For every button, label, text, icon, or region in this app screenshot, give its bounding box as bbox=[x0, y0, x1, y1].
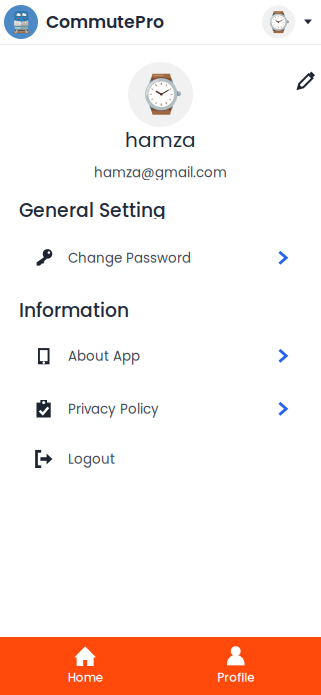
staticText: Information bbox=[19, 297, 129, 323]
staticText: General Setting bbox=[19, 197, 166, 223]
staticText: 🚆 bbox=[8, 10, 33, 34]
button[interactable]: Menu bbox=[295, 5, 321, 39]
button[interactable]: Change Password bbox=[0, 238, 321, 278]
staticText: ⌚ bbox=[266, 10, 291, 34]
button[interactable]: Logout bbox=[0, 439, 321, 479]
button[interactable]: Account bbox=[262, 5, 295, 38]
button[interactable]: Profile bbox=[160, 637, 311, 695]
staticText: ⌚ bbox=[137, 73, 183, 116]
staticText: Privacy Policy bbox=[68, 400, 159, 418]
staticText: Logout bbox=[68, 450, 115, 468]
button[interactable]: Privacy Policy bbox=[0, 389, 321, 429]
button[interactable]: About App bbox=[0, 336, 321, 376]
staticText: Profile bbox=[217, 669, 254, 686]
staticText: About App bbox=[68, 347, 140, 365]
staticText: Home bbox=[68, 669, 103, 686]
staticText: hamza bbox=[125, 126, 196, 154]
staticText: hamza@gmail.com bbox=[94, 163, 227, 182]
staticText: Change Password bbox=[68, 249, 191, 267]
button[interactable]: Home bbox=[10, 637, 160, 695]
staticText: CommutePro bbox=[46, 10, 164, 34]
button[interactable]: Edit profile bbox=[289, 63, 321, 97]
